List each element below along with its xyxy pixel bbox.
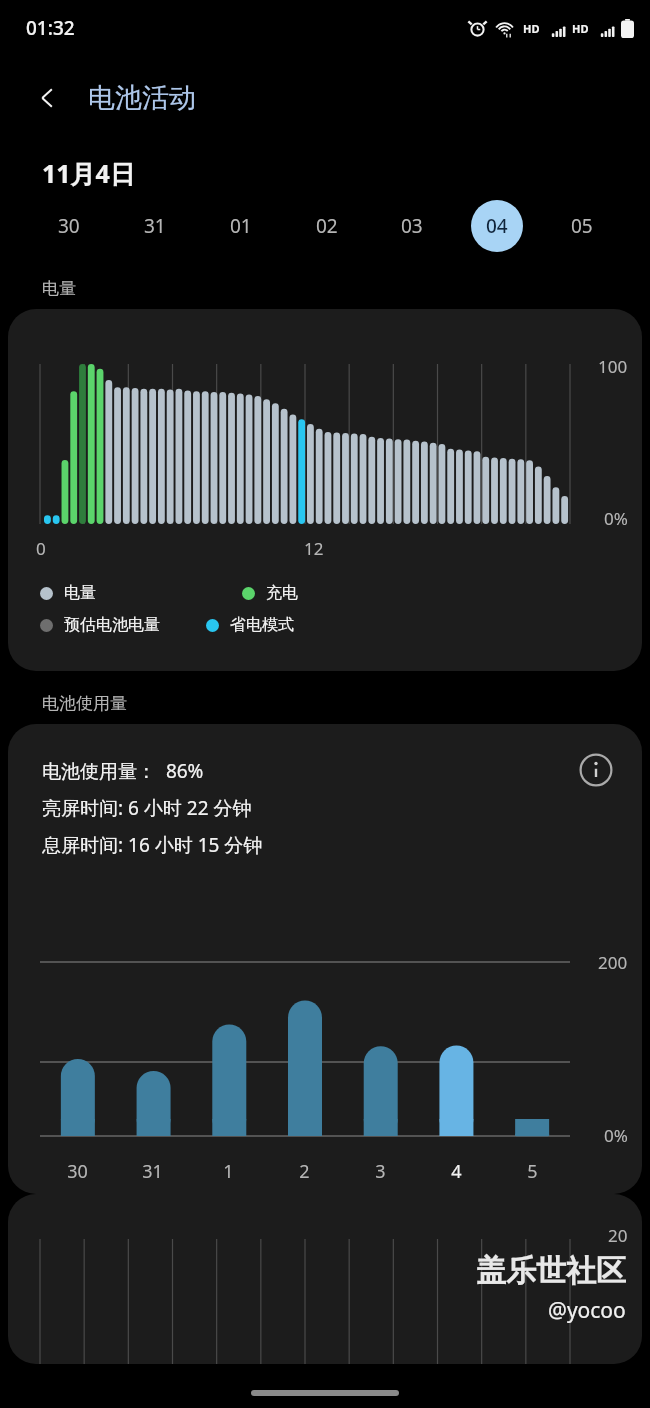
staticText: 电池使用量： 86% — [42, 758, 204, 784]
staticText: 电池活动 — [88, 81, 196, 115]
staticText: @yocoo — [548, 1296, 626, 1325]
button[interactable]: Info — [574, 748, 618, 792]
staticText: HD — [523, 21, 540, 36]
staticText: 0% — [604, 507, 628, 530]
button[interactable]: 31 — [112, 198, 198, 254]
staticText: 01 — [230, 213, 252, 239]
staticText: 04 — [486, 213, 508, 239]
staticText: 02 — [316, 213, 338, 239]
staticText: 省电模式 — [230, 615, 294, 635]
staticText: 2 — [299, 1159, 310, 1184]
button[interactable]: 01 — [198, 198, 284, 254]
staticText: 盖乐世社区 — [476, 1252, 626, 1290]
button[interactable]: 05 — [539, 198, 624, 254]
staticText: 3 — [375, 1159, 386, 1184]
staticText: 03 — [401, 213, 423, 239]
staticText: 31 — [142, 1159, 163, 1184]
button[interactable]: Back — [22, 72, 74, 124]
staticText: 充电 — [266, 583, 298, 603]
button[interactable]: 02 — [284, 198, 369, 254]
staticText: 31 — [144, 213, 166, 239]
button[interactable]: 100 — [8, 309, 642, 671]
staticText: 4 — [451, 1159, 462, 1184]
button[interactable]: 30 — [26, 198, 112, 254]
staticText: 05 — [571, 213, 593, 239]
staticText: 0% — [604, 1124, 628, 1147]
button[interactable]: 20 — [8, 1194, 642, 1364]
staticText: 电量 — [42, 278, 76, 299]
staticText: 电池使用量 — [42, 693, 127, 714]
staticText: 亮屏时间: 6 小时 22 分钟 — [42, 795, 252, 821]
button[interactable]: 03 — [369, 198, 454, 254]
staticText: 100 — [598, 355, 628, 378]
staticText: 200 — [598, 951, 628, 974]
staticText: 30 — [67, 1159, 88, 1184]
staticText: 0 — [36, 537, 46, 560]
staticText: 12 — [304, 537, 324, 560]
staticText: 20 — [608, 1224, 628, 1247]
staticText: 5 — [527, 1159, 538, 1184]
staticText: 电量 — [64, 583, 96, 603]
staticText: 01:32 — [26, 15, 75, 41]
staticText: 1 — [223, 1159, 234, 1184]
staticText: 11月4日 — [42, 156, 135, 190]
button[interactable]: 电池使用量： 86% — [8, 724, 642, 1194]
staticText: 30 — [58, 213, 80, 239]
staticText: 预估电池电量 — [64, 615, 160, 635]
staticText: HD — [572, 21, 589, 36]
staticText: 息屏时间: 16 小时 15 分钟 — [42, 832, 263, 858]
button[interactable]: 04 — [454, 198, 539, 254]
